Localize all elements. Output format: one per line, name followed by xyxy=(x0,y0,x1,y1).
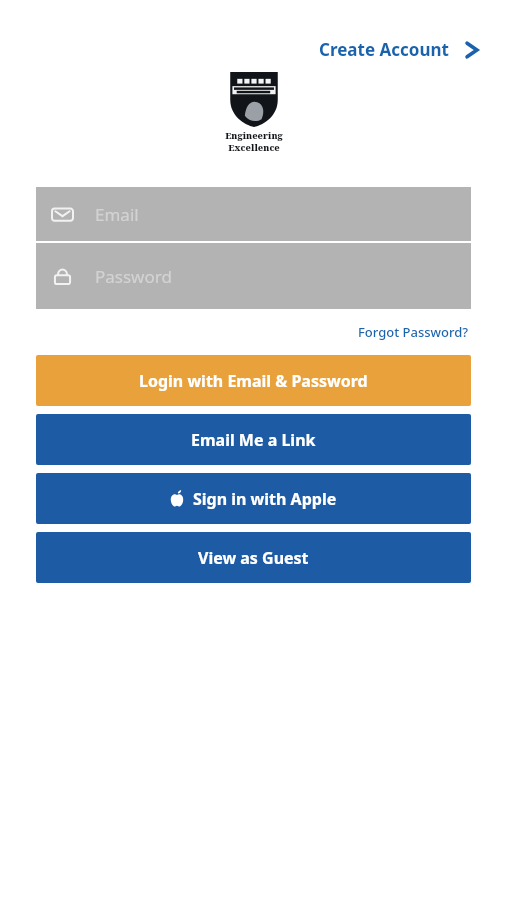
staticText: Excellence xyxy=(228,141,280,153)
button[interactable]: Login with Email & Password xyxy=(36,355,471,406)
staticText: Email xyxy=(95,203,139,226)
button[interactable]: Forgot Password? xyxy=(354,319,473,345)
button[interactable]: View as Guest xyxy=(36,532,471,583)
staticText: Create Account xyxy=(319,38,449,61)
button[interactable]: Email xyxy=(36,187,471,241)
staticText: Forgot Password? xyxy=(358,323,469,341)
staticText: View as Guest xyxy=(198,547,309,569)
button[interactable]: Create Account xyxy=(315,34,483,65)
staticText: Email Me a Link xyxy=(191,429,316,451)
button[interactable]: Email Me a Link xyxy=(36,414,471,465)
button[interactable]: Sign in with Apple xyxy=(36,473,471,524)
button[interactable]: Password xyxy=(36,243,471,309)
staticText: Engineering xyxy=(225,129,283,141)
staticText: Sign in with Apple xyxy=(193,488,337,510)
staticText: Login with Email & Password xyxy=(139,370,368,392)
staticText: Password xyxy=(95,265,172,288)
